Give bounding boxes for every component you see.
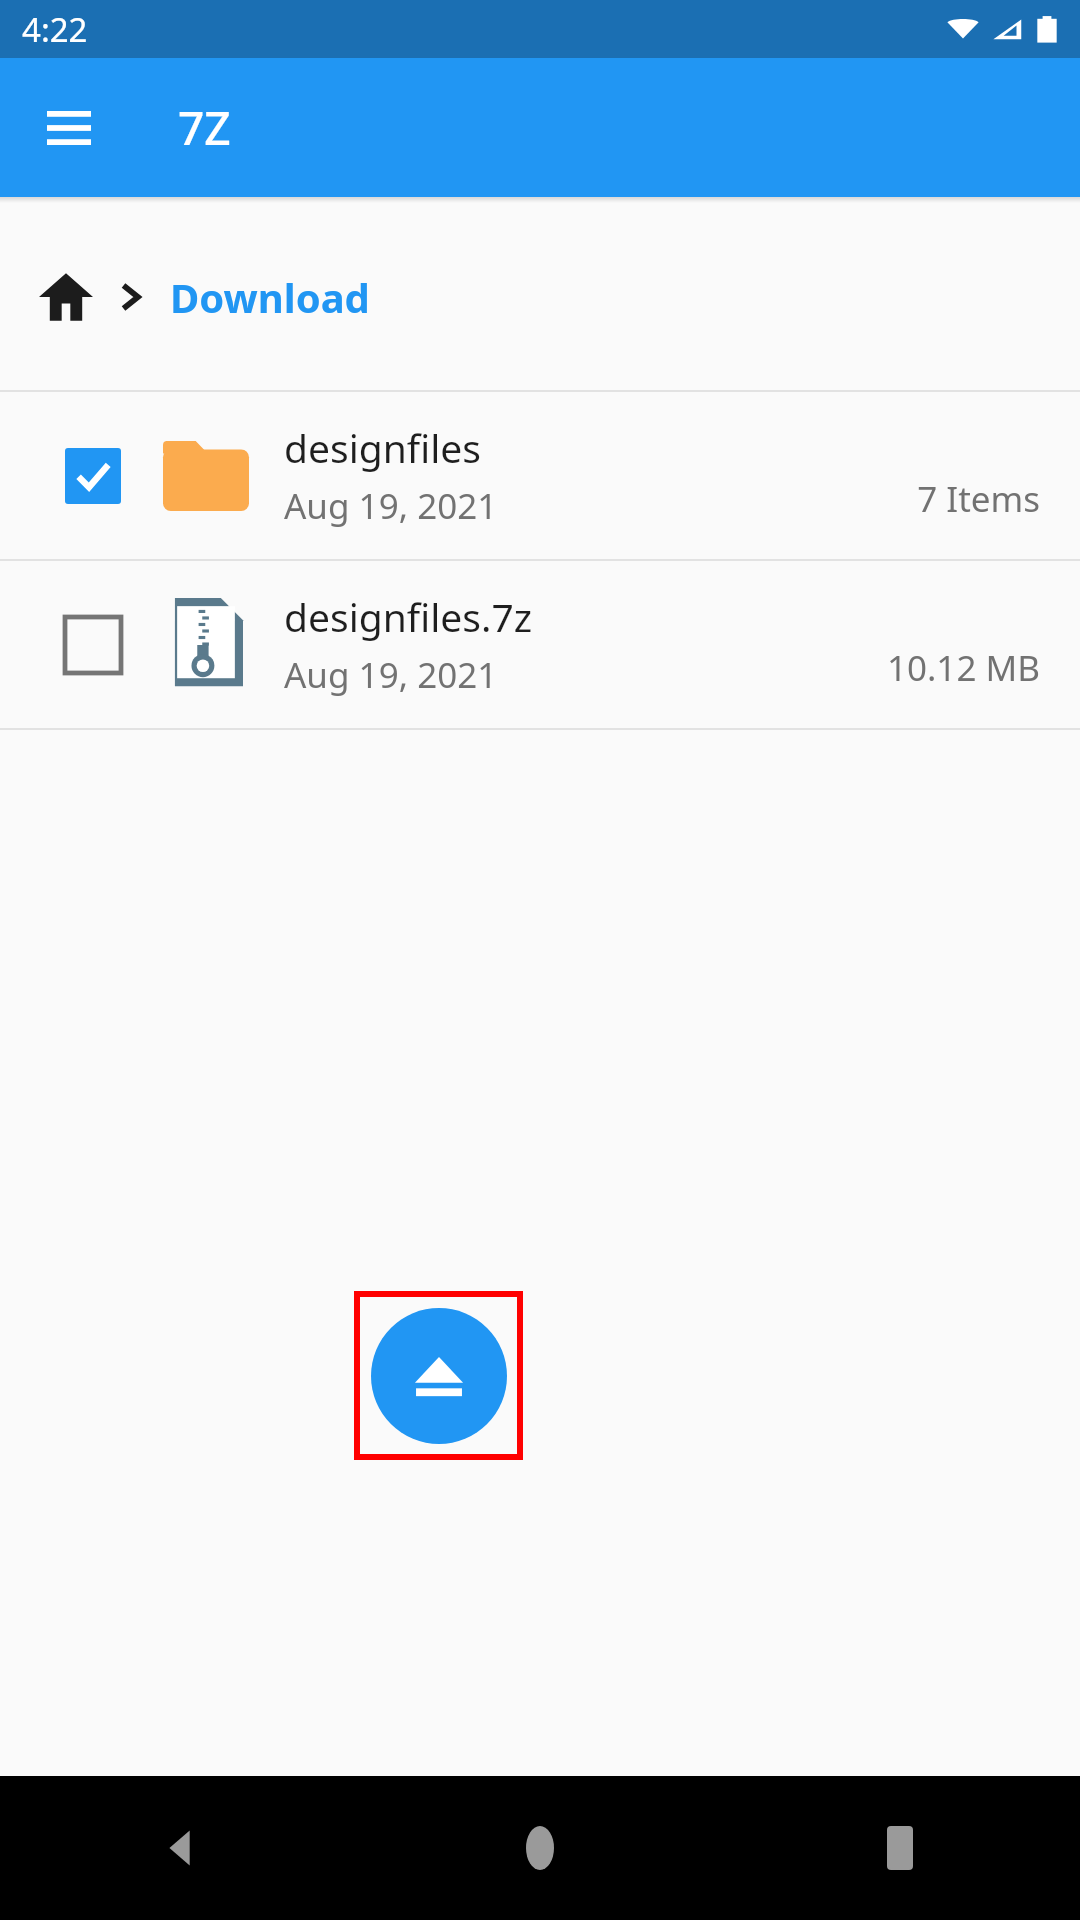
button[interactable]: Extract — [371, 1308, 507, 1444]
staticText: designfiles — [284, 421, 482, 474]
button[interactable]: Open navigation menu — [26, 85, 112, 171]
button[interactable]: Selected — [0, 392, 1080, 559]
staticText: designfiles.7z — [284, 590, 533, 643]
button[interactable]: Download — [170, 270, 370, 324]
staticText: Download — [170, 270, 370, 324]
button[interactable]: Selected — [48, 431, 138, 521]
staticText: 4:22 — [22, 7, 88, 52]
staticText: 7 Items — [917, 475, 1040, 523]
staticText: Aug 19, 2021 — [284, 651, 498, 699]
staticText: Aug 19, 2021 — [284, 482, 498, 530]
button[interactable]: Back — [0, 1776, 360, 1920]
staticText: 10.12 MB — [886, 644, 1040, 692]
button[interactable]: Home — [20, 251, 112, 343]
button[interactable]: Not selected — [48, 600, 138, 690]
button[interactable]: Home — [360, 1776, 720, 1920]
staticText: 7Z — [178, 96, 231, 159]
button[interactable]: Recent apps — [720, 1776, 1080, 1920]
button[interactable]: Not selected — [0, 561, 1080, 728]
